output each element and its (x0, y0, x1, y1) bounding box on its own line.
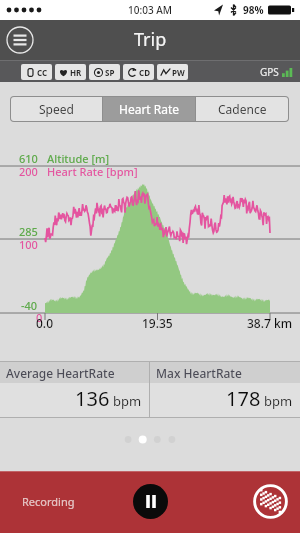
button[interactable]: Average HeartRate (0, 362, 149, 417)
staticText: 10:03 AM (128, 3, 172, 17)
staticText: Speed (39, 101, 74, 117)
button[interactable]: SP (89, 64, 120, 80)
button[interactable]: HR (55, 64, 86, 80)
staticText: HR (70, 67, 82, 78)
button[interactable]: CC (21, 64, 52, 80)
staticText: bpm (113, 392, 142, 410)
staticText: Average HeartRate (6, 365, 115, 381)
staticText: 19.35 (142, 315, 173, 331)
button[interactable]: Cadence (196, 97, 288, 121)
staticText: Cadence (218, 101, 267, 117)
staticText: 38.7 km (247, 315, 293, 331)
staticText: 0 (36, 310, 43, 325)
staticText: Max HeartRate (156, 365, 242, 381)
staticText: 178 (226, 385, 261, 412)
staticText: CD (139, 67, 150, 78)
staticText: -40 (21, 298, 38, 313)
staticText: Altitude [m] (47, 151, 110, 166)
staticText: SP (105, 67, 115, 78)
button[interactable]: Finish (253, 484, 288, 519)
staticText: 100 (19, 237, 38, 252)
staticText: Recording (22, 494, 75, 509)
staticText: PW (172, 67, 185, 78)
staticText: bpm (264, 392, 293, 410)
staticText: 285 (19, 224, 38, 239)
button[interactable]: Max HeartRate (150, 362, 300, 417)
button[interactable]: Pause (133, 484, 168, 519)
button[interactable]: PW (157, 64, 188, 80)
button[interactable]: Heart Rate (103, 97, 195, 121)
button[interactable]: CD (123, 64, 154, 80)
staticText: GPS (260, 65, 279, 79)
staticText: 0.0 (36, 315, 53, 331)
staticText: 200 (19, 164, 38, 179)
button[interactable]: Menu (6, 26, 34, 54)
staticText: CC (37, 67, 48, 78)
button[interactable]: Speed (11, 97, 102, 121)
staticText: Heart Rate [bpm] (47, 164, 138, 179)
staticText: Trip (134, 27, 167, 52)
staticText: 98% (243, 3, 264, 17)
staticText: 610 (19, 151, 38, 166)
staticText: 136 (75, 385, 110, 412)
staticText: Heart Rate (119, 101, 180, 117)
